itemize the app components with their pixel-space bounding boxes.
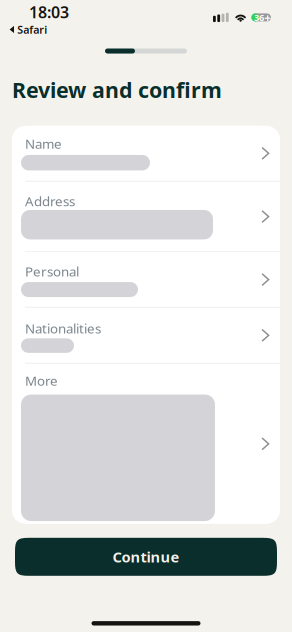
button[interactable]: Personal [12,252,280,307]
staticText: Name [25,135,62,152]
staticText: 18:03 [29,1,69,22]
button[interactable]: Continue [15,538,277,576]
button[interactable]: Address [12,182,280,251]
button[interactable]: Nationalities [12,308,280,363]
staticText: More [25,372,58,389]
staticText: Review and confirm [12,75,222,104]
staticText: Personal [25,262,79,280]
button[interactable]: Safari [0,21,53,38]
button[interactable]: Name [12,126,280,181]
staticText: Continue [112,547,179,567]
staticText: Address [25,192,75,210]
staticText: Safari [17,22,47,37]
button[interactable]: More [12,364,280,524]
staticText: 36 [254,11,264,24]
staticText: Nationalities [25,319,101,337]
